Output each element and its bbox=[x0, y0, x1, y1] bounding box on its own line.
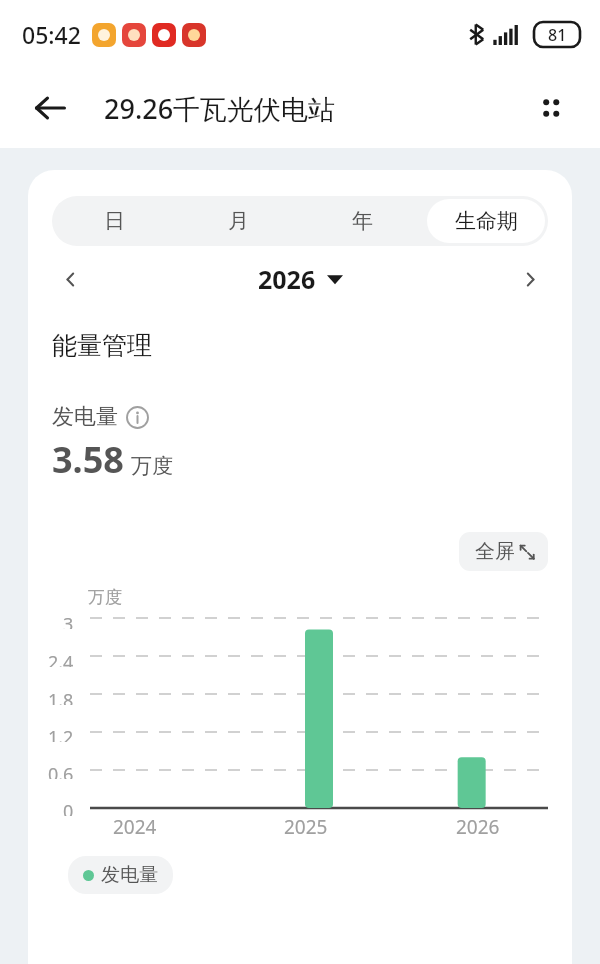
staticText: 2024 bbox=[113, 814, 157, 840]
staticText: 2025 bbox=[284, 814, 328, 840]
button[interactable]: Previous year bbox=[48, 257, 92, 301]
staticText: 万度 bbox=[131, 453, 173, 479]
button[interactable]: Back bbox=[22, 80, 78, 136]
staticText: 2026 bbox=[258, 262, 316, 296]
button[interactable]: 日 bbox=[55, 199, 173, 243]
staticText: 发电量 bbox=[52, 403, 118, 431]
staticText: 1.8 bbox=[48, 688, 74, 705]
staticText: 2026 bbox=[456, 814, 500, 840]
button[interactable]: 全屏 bbox=[459, 532, 548, 571]
button[interactable]: 月 bbox=[179, 199, 297, 243]
staticText: 生命期 bbox=[455, 208, 518, 234]
button[interactable]: 生命期 bbox=[427, 199, 545, 243]
staticText: 29.26千瓦光伏电站 bbox=[104, 90, 336, 127]
staticText: 万度 bbox=[88, 587, 122, 608]
staticText: 月 bbox=[228, 208, 249, 234]
staticText: 年 bbox=[352, 208, 373, 234]
staticText: 能量管理 bbox=[52, 330, 152, 361]
button[interactable]: More options bbox=[524, 81, 578, 135]
staticText: 0 bbox=[63, 799, 74, 816]
button[interactable]: 年 bbox=[303, 199, 421, 243]
staticText: 3 bbox=[63, 612, 74, 629]
staticText: 05:42 bbox=[22, 19, 81, 50]
staticText: 全屏 bbox=[475, 539, 515, 564]
button[interactable]: 发电量 bbox=[68, 856, 173, 894]
staticText: 3.58 bbox=[52, 435, 124, 484]
button[interactable]: 2026 bbox=[258, 262, 343, 296]
staticText: 日 bbox=[104, 208, 125, 234]
staticText: 2.4 bbox=[48, 650, 74, 667]
staticText: 0.6 bbox=[48, 762, 74, 779]
button[interactable]: Info bbox=[126, 406, 149, 429]
staticText: 81 bbox=[548, 24, 567, 46]
staticText: 1.2 bbox=[48, 725, 74, 742]
staticText: 发电量 bbox=[101, 863, 158, 887]
button[interactable]: Next year bbox=[508, 257, 552, 301]
